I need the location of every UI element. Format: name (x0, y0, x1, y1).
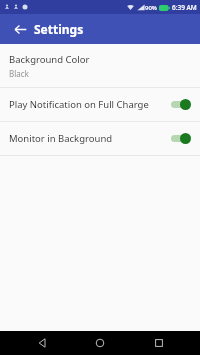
staticText: Monitor in Background (9, 132, 164, 145)
staticText: 90% (145, 4, 157, 12)
staticText: Black (9, 68, 29, 79)
staticText: Play Notification on Full Charge (9, 98, 164, 111)
button[interactable]: Monitor in Background (0, 122, 200, 155)
button[interactable]: Back (8, 17, 32, 41)
button[interactable]: Recent apps (142, 331, 176, 355)
button[interactable]: Back (25, 331, 59, 355)
button[interactable]: Play Notification on Full Charge (0, 88, 200, 121)
staticText: 6:39 AM (172, 3, 197, 12)
button[interactable]: Background Color (0, 44, 200, 87)
button[interactable]: Home (83, 331, 117, 355)
staticText: Background Color (9, 53, 90, 66)
staticText: Settings (34, 21, 84, 37)
